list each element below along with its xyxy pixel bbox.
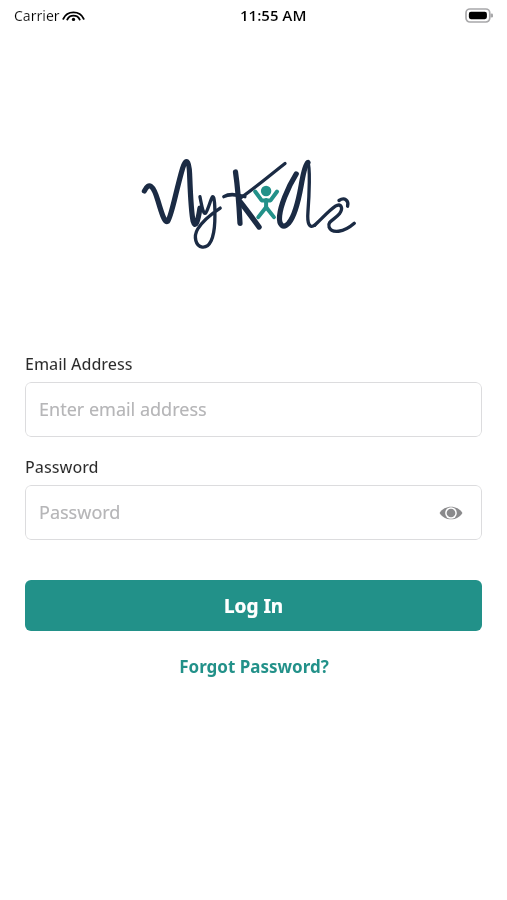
staticText: Password xyxy=(25,456,99,478)
staticText: Enter email address xyxy=(39,397,468,422)
staticText: 11:55 AM xyxy=(240,5,307,25)
staticText: Email Address xyxy=(25,353,133,375)
other: My Kids logo xyxy=(141,153,366,248)
staticText: Carrier xyxy=(14,6,60,25)
button[interactable]: Forgot Password? xyxy=(25,652,482,680)
staticText: Log In xyxy=(224,593,284,619)
button[interactable]: Show password xyxy=(434,496,468,530)
staticText: Password xyxy=(39,500,434,525)
button[interactable]: Enter email address xyxy=(25,382,482,437)
button[interactable]: Password xyxy=(25,485,482,540)
staticText: Forgot Password? xyxy=(179,655,329,678)
button[interactable]: Log In xyxy=(25,580,482,631)
